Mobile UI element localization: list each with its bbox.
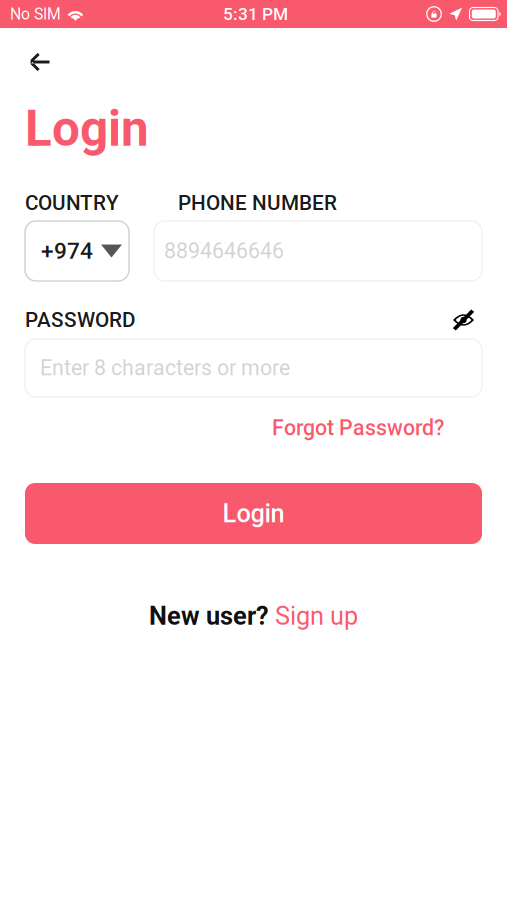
staticText: New user? (149, 601, 275, 631)
staticText: +974 (41, 238, 93, 264)
button[interactable]: +974 (25, 221, 129, 281)
staticText: No SIM (10, 5, 61, 23)
staticText: 5:31 PM (223, 4, 288, 24)
button[interactable]: Forgot Password? (272, 415, 444, 440)
staticText: PHONE NUMBER (178, 191, 337, 215)
button[interactable]: Back (25, 40, 73, 84)
staticText: Enter 8 characters or more (40, 355, 290, 380)
staticText: COUNTRY (25, 191, 119, 215)
staticText: 8894646646 (164, 238, 284, 263)
staticText: PASSWORD (25, 308, 135, 332)
button[interactable]: Sign up (275, 601, 358, 631)
staticText: Forgot Password? (272, 415, 444, 440)
button[interactable]: Login (25, 483, 482, 544)
staticText: Login (222, 499, 284, 528)
staticText: Login (25, 100, 149, 158)
staticText: Sign up (275, 601, 358, 631)
button[interactable]: Show password (453, 311, 482, 329)
